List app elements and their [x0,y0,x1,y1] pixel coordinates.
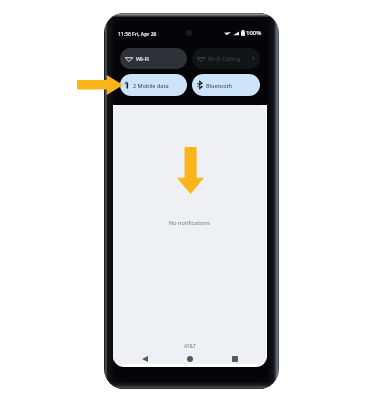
staticText: No notifications [169,219,210,226]
staticText: Wi-Fi [136,55,149,62]
staticText: Bluetooth [206,82,233,89]
button[interactable]: Home [177,352,203,364]
button[interactable]: Wi-Fi [120,48,187,69]
button[interactable]: 2 Mobile data [120,74,187,96]
button[interactable]: Bluetooth [192,74,260,96]
button[interactable]: Recent apps [222,352,248,364]
button[interactable]: Back [132,352,158,364]
staticText: AT&T [184,343,196,350]
staticText: 2 Mobile data [133,82,169,89]
staticText: Wi-Fi Calling [208,55,241,62]
button[interactable]: Wi-Fi Calling [192,48,260,69]
staticText: 11:36 Fri, Apr 26 [118,31,157,38]
staticText: 100% [246,29,262,37]
